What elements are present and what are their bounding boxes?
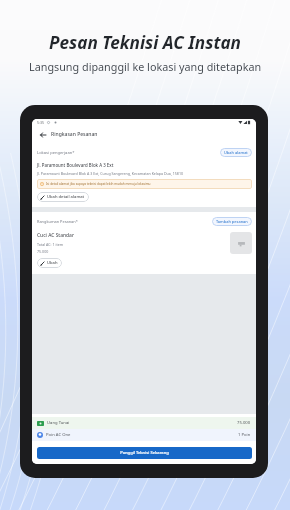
staticText: Poin AC One [46,432,71,438]
button[interactable]: Panggil Teknisi Sekarang [37,447,252,459]
button[interactable]: Back [38,130,47,139]
staticText: Tambah pesanan [216,219,248,224]
staticText: Isi detail alamat jika supaya teknisi da… [46,182,151,186]
staticText: Uang Tunai [47,420,70,426]
staticText: 75.000 [237,420,251,426]
staticText: Total AC: 1 item [37,242,64,247]
staticText: Ubah alamat [224,150,248,155]
button[interactable]: Tambah pesanan [212,217,252,226]
staticText: Rangkuman Pesanan* [37,219,78,224]
staticText: Pesan Teknisi AC Instan [49,31,242,54]
button[interactable]: Ubah detail alamat [37,192,89,202]
staticText: 5:35 [37,120,45,125]
staticText: Cuci AC Standar [37,232,74,239]
staticText: Ubah [47,260,58,266]
button[interactable]: Poin AC One [32,429,256,441]
staticText: Jl. Paramount Boulevard Blok A 3 Ext, Cu… [37,171,184,176]
staticText: 75.000 [37,249,49,254]
button[interactable]: Ubah alamat [220,148,252,157]
staticText: Ubah detail alamat [47,194,85,200]
staticText: Jl. Paramount Boulevard Blok A 3 Ext [37,162,114,168]
button[interactable]: Ubah [37,258,62,268]
staticText: 1 Poin [238,432,251,438]
button[interactable]: Uang Tunai [32,417,256,429]
staticText: Ringkasan Pesanan [51,131,98,138]
staticText: Panggil Teknisi Sekarang [120,450,169,456]
staticText: Lokasi pengerjaan* [37,150,75,156]
staticText: Langsung dipanggil ke lokasi yang diteta… [29,59,262,74]
